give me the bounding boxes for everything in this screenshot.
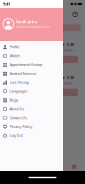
button[interactable]: Booked Services (0, 69, 63, 78)
staticText: Hair Cut $ 30 (50, 75, 74, 80)
button[interactable]: Contact Us (0, 113, 63, 122)
staticText: Salon at home (50, 48, 73, 52)
staticText: Sarah John (16, 19, 38, 24)
button[interactable]: Live Pricing (0, 78, 63, 87)
staticText: 9:41 (3, 1, 10, 7)
staticText: Live Pricing (9, 80, 28, 85)
staticText: Wallet (9, 53, 19, 58)
button[interactable]: Profile (0, 43, 63, 51)
staticText: sarahjohn@gmail.com (16, 25, 50, 29)
staticText: Languages (9, 89, 27, 94)
button[interactable]: About Us (0, 105, 63, 113)
staticText: Privacy Policy (9, 124, 32, 129)
button[interactable]: Privacy Policy (0, 122, 63, 131)
staticText: Contact Us (9, 115, 27, 120)
button[interactable]: Blogs (0, 96, 63, 104)
staticText: Salon at home (50, 81, 73, 85)
button[interactable]: Log Out (0, 131, 63, 140)
staticText: Log Out (9, 133, 22, 138)
staticText: Hair Cut $ 30 (50, 42, 74, 47)
button[interactable]: Appointment History (0, 60, 63, 69)
staticText: Booked Services (9, 71, 36, 76)
staticText: About Us (9, 107, 24, 111)
button[interactable]: Languages (0, 87, 63, 96)
button[interactable]: Wallet (0, 51, 63, 60)
staticText: Blogs (9, 98, 18, 102)
staticText: Profile (9, 45, 19, 49)
staticText: Appointment History (9, 62, 42, 67)
